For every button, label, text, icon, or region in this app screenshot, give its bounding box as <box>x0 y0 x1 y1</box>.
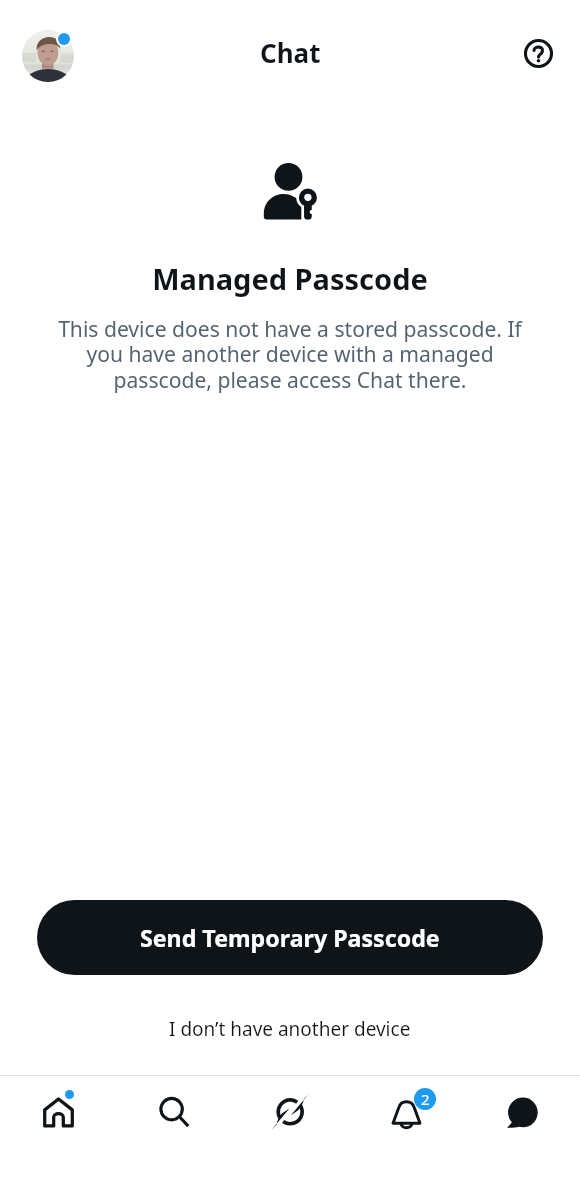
staticText: Send Temporary Passcode <box>140 922 440 954</box>
button[interactable]: Notifications <box>348 1076 464 1148</box>
button[interactable]: Profile <box>22 30 78 86</box>
button[interactable]: Help <box>516 31 560 75</box>
staticText: Chat <box>260 35 321 70</box>
button[interactable]: I don’t have another device <box>0 975 580 1075</box>
button[interactable]: Search <box>116 1076 232 1148</box>
staticText: 2 <box>421 1089 430 1109</box>
button[interactable]: Messages <box>464 1076 580 1148</box>
staticText: This device does not have a stored passc… <box>45 314 535 394</box>
button[interactable]: Home <box>0 1076 116 1148</box>
button[interactable]: Grok <box>232 1076 348 1148</box>
staticText: Managed Passcode <box>0 259 580 298</box>
staticText: I don’t have another device <box>169 1016 411 1042</box>
button[interactable]: Send Temporary Passcode <box>37 900 543 975</box>
